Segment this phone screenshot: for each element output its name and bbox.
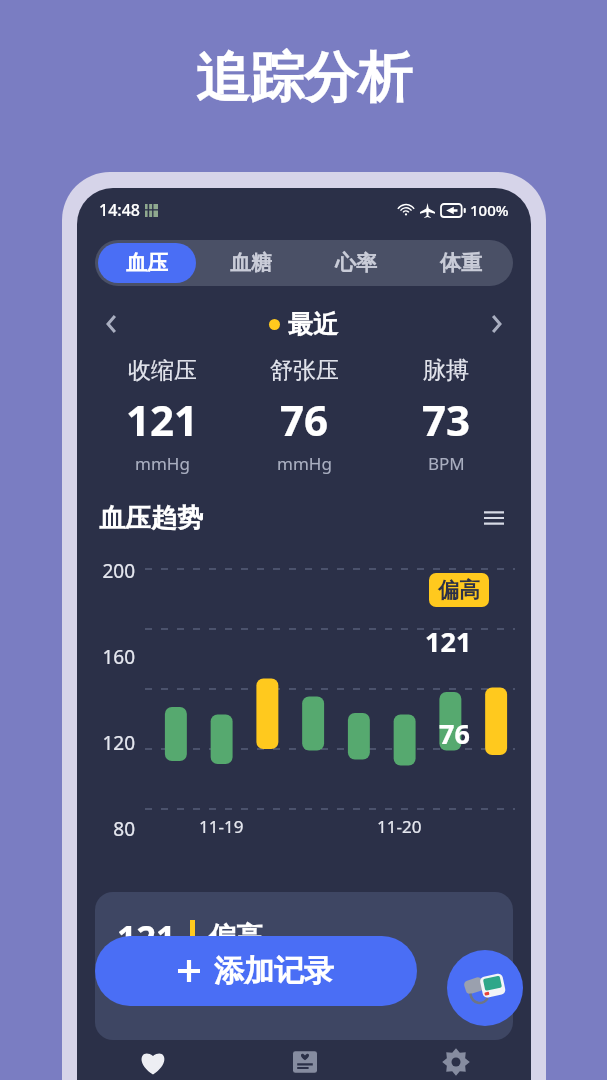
button[interactable]: Blood pressure monitor xyxy=(447,950,523,1026)
button[interactable]: 收缩压 xyxy=(91,356,233,475)
button[interactable]: 舒张压 xyxy=(233,356,375,475)
staticText: 76 xyxy=(439,715,470,752)
button[interactable]: 血糖 xyxy=(202,243,300,283)
staticText: 偏高 xyxy=(438,577,480,603)
staticText: 40 xyxy=(77,902,135,928)
button[interactable]: 心率 xyxy=(306,243,405,283)
button[interactable]: Settings xyxy=(380,1036,531,1080)
staticText: 血压趋势 xyxy=(99,502,203,535)
staticText: 舒张压 xyxy=(270,356,339,385)
staticText: 121 xyxy=(126,391,199,448)
button[interactable]: Next xyxy=(481,309,511,339)
staticText: 收缩压 xyxy=(128,356,197,385)
button[interactable]: Records xyxy=(229,1036,380,1080)
staticText: 14:48 xyxy=(99,199,140,221)
staticText: 最近 xyxy=(288,309,338,340)
staticText: 11-20 xyxy=(377,815,422,838)
staticText: mmHg xyxy=(277,452,332,475)
staticText: 添加记录 xyxy=(214,952,334,990)
button[interactable]: 添加记录 xyxy=(95,936,417,1006)
staticText: 血糖 xyxy=(230,250,272,276)
staticText: 121 xyxy=(117,914,176,960)
staticText: 80 xyxy=(77,816,135,842)
button[interactable]: Previous xyxy=(97,309,127,339)
staticText: 120 xyxy=(77,730,135,756)
staticText: 追踪分析 xyxy=(196,44,412,112)
staticText: 73 xyxy=(422,391,471,448)
staticText: 11-19 xyxy=(199,815,244,838)
staticText: 100% xyxy=(470,200,509,220)
button[interactable]: Health xyxy=(77,1036,229,1080)
button[interactable]: 121 xyxy=(95,892,513,1040)
staticText: 160 xyxy=(77,644,135,670)
staticText: 心率 xyxy=(335,250,377,276)
staticText: BPM xyxy=(428,452,465,475)
staticText: 血压 xyxy=(126,250,168,276)
staticText: 脉搏 xyxy=(423,356,469,385)
staticText: 121 xyxy=(425,623,472,660)
button[interactable]: Menu xyxy=(479,503,509,533)
button[interactable]: 脉搏 xyxy=(375,356,517,475)
button[interactable]: 偏高 xyxy=(438,577,480,603)
staticText: 200 xyxy=(77,558,135,584)
button[interactable]: 体重 xyxy=(411,243,510,283)
staticText: 体重 xyxy=(440,250,482,276)
button[interactable]: 血压 xyxy=(98,243,196,283)
staticText: mmHg xyxy=(135,452,190,475)
staticText: 偏高 xyxy=(209,920,263,954)
staticText: 76 xyxy=(280,391,329,448)
